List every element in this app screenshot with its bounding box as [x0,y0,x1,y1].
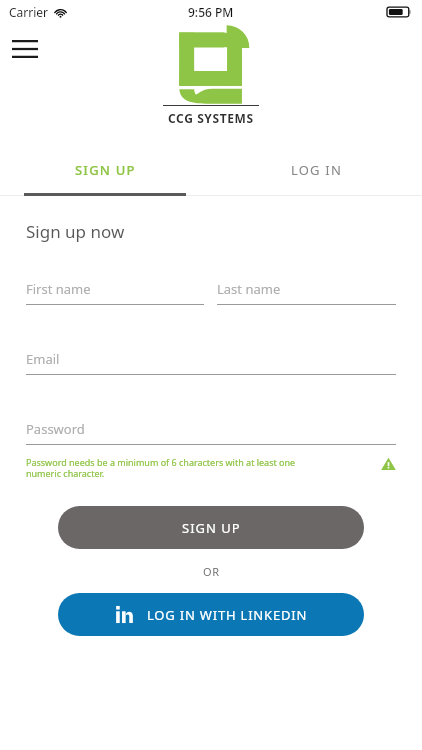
staticText: SIGN UP [182,519,241,537]
button[interactable]: Email [26,350,396,375]
staticText: Last name [217,280,281,298]
staticText: SIGN UP [75,161,136,179]
button[interactable]: LOG IN WITH LINKEDIN [58,593,364,636]
staticText: Password [26,420,85,438]
staticText: OR [203,564,220,579]
button[interactable]: SIGN UP [58,506,364,549]
staticText: LOG IN [291,161,343,179]
staticText: 9:56 PM [188,4,234,20]
staticText: LOG IN WITH LINKEDIN [147,606,308,624]
staticText: First name [26,280,91,298]
staticText: Password needs be a minimum of 6 charact… [26,456,296,480]
button[interactable]: Menu [8,32,42,66]
staticText: CCG SYSTEMS [168,110,254,126]
staticText: Sign up now [26,220,125,243]
button[interactable]: First name [26,280,204,305]
button[interactable]: LOG IN [211,146,422,193]
staticText: Carrier [9,4,49,20]
button[interactable]: SIGN UP [0,146,211,193]
button[interactable]: Last name [217,280,396,305]
button[interactable]: Password [26,420,396,445]
staticText: Email [26,350,60,368]
